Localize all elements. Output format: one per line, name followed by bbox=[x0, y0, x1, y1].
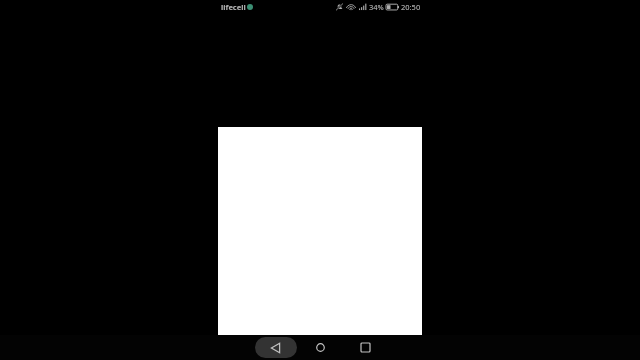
staticText: 20:50 bbox=[401, 2, 421, 12]
button[interactable]: Home bbox=[299, 337, 341, 358]
staticText: lifecell bbox=[221, 2, 246, 12]
button[interactable]: Recent apps bbox=[344, 337, 386, 358]
staticText: 34% bbox=[369, 2, 384, 12]
button[interactable]: Back bbox=[255, 337, 297, 358]
